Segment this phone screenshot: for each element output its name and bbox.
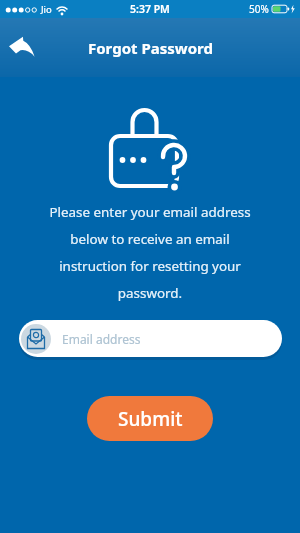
staticText: Jio [41, 3, 52, 16]
button[interactable]: Submit [87, 396, 213, 441]
staticText: Submit [118, 406, 183, 432]
button[interactable] [8, 35, 36, 61]
staticText: 50% [249, 2, 269, 16]
staticText: 5:37 PM [130, 2, 170, 16]
button[interactable]: Email address [19, 320, 282, 357]
staticText: Forgot Password [88, 38, 213, 58]
staticText: Please enter your email address below to… [0, 203, 300, 302]
staticText: Email address [62, 331, 141, 347]
